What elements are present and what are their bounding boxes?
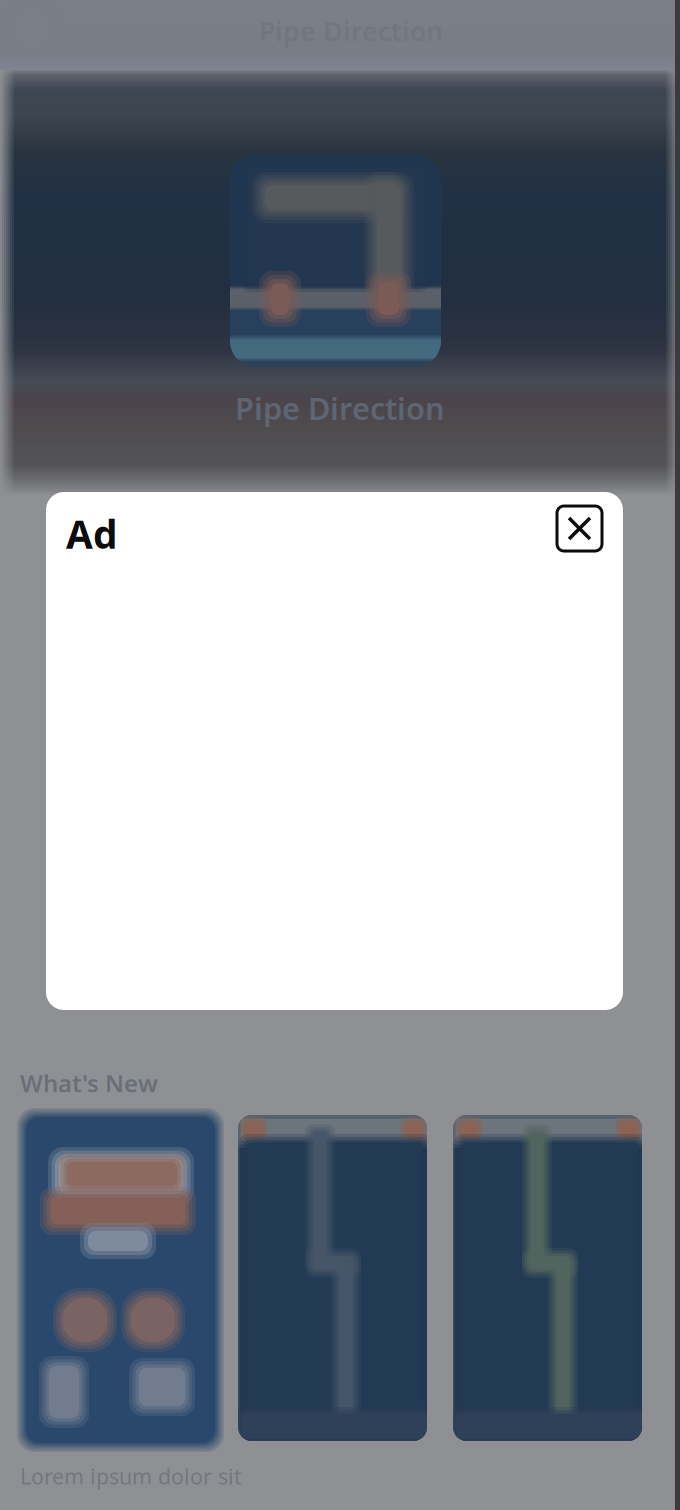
staticText: Ad — [66, 508, 117, 559]
button[interactable]: Close ad — [557, 506, 602, 551]
staticText: What's New — [20, 1067, 158, 1099]
staticText: Pipe Direction — [235, 388, 445, 428]
staticText: Lorem ipsum dolor sit — [20, 1462, 242, 1490]
